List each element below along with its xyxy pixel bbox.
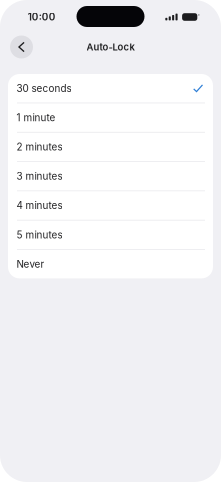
staticText: 30 seconds xyxy=(16,82,71,94)
button[interactable]: 3 minutes xyxy=(8,162,213,190)
button[interactable]: 5 minutes xyxy=(8,220,213,249)
button[interactable]: Back xyxy=(10,35,33,58)
button[interactable]: 2 minutes xyxy=(8,133,213,161)
staticText: 10:00 xyxy=(28,11,56,23)
staticText: Auto-Lock xyxy=(86,41,134,53)
staticText: 2 minutes xyxy=(16,141,62,153)
button[interactable]: 30 seconds xyxy=(8,74,213,103)
staticText: 1 minute xyxy=(16,112,55,123)
button[interactable]: Never xyxy=(8,250,213,278)
staticText: 3 minutes xyxy=(16,170,62,182)
staticText: 5 minutes xyxy=(16,229,62,241)
staticText: 4 minutes xyxy=(16,199,62,211)
button[interactable]: 4 minutes xyxy=(8,191,213,220)
button[interactable]: 1 minute xyxy=(8,103,213,132)
staticText: Never xyxy=(16,258,44,270)
